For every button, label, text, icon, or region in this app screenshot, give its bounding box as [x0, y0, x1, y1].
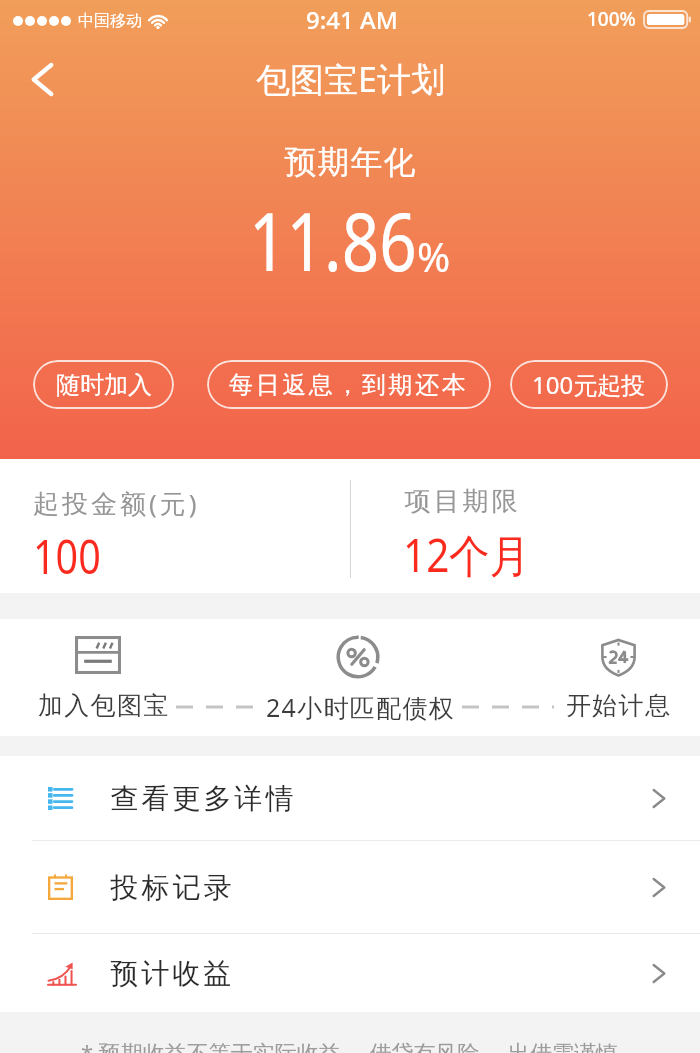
staticText: 每日返息，到期还本 — [229, 370, 469, 400]
staticText: 100 — [33, 524, 101, 588]
staticText: % — [417, 229, 451, 283]
button[interactable]: 随时加入 — [33, 360, 174, 409]
button[interactable]: 100元起投 — [510, 360, 668, 409]
button[interactable]: 投标记录 — [0, 841, 700, 933]
button[interactable]: Back — [16, 53, 68, 105]
staticText: 随时加入 — [56, 370, 152, 400]
staticText: 中国移动 — [78, 11, 142, 31]
staticText: 包图宝E计划 — [256, 56, 445, 102]
button[interactable]: 每日返息，到期还本 — [207, 360, 491, 409]
staticText: 起投金额(元) — [33, 485, 200, 521]
staticText: 查看更多详情 — [109, 781, 295, 816]
staticText: * 预期收益不等于实际收益 借贷有风险 出借需谨慎 — [81, 1037, 619, 1053]
staticText: 12个月 — [403, 524, 531, 585]
staticText: 加入包图宝 — [38, 690, 170, 721]
staticText: 100% — [587, 6, 636, 32]
button[interactable]: 预计收益 — [0, 934, 700, 1012]
staticText: 预计收益 — [109, 956, 233, 991]
staticText: 开始计息 — [566, 690, 672, 721]
staticText: 11.86 — [249, 184, 417, 294]
staticText: 项目期限 — [403, 485, 519, 518]
staticText: 24小时匹配债权 — [266, 690, 456, 724]
button[interactable]: 查看更多详情 — [0, 756, 700, 840]
staticText: 预期年化 — [284, 142, 416, 182]
staticText: 100元起投 — [532, 368, 646, 401]
staticText: 9:41 AM — [306, 3, 398, 36]
staticText: 投标记录 — [109, 870, 233, 905]
